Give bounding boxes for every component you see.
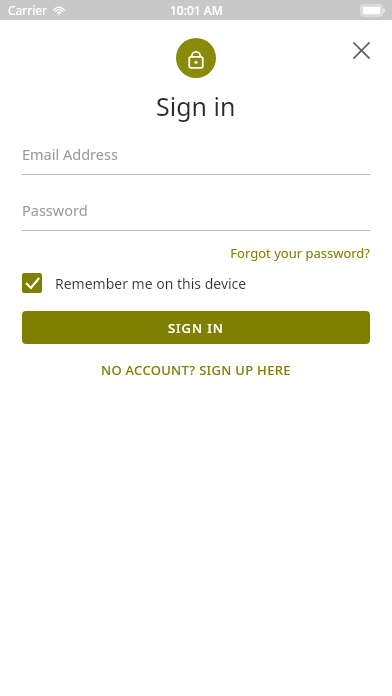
button[interactable]: Close (342, 31, 380, 69)
button[interactable]: Remember me on this device (22, 273, 370, 293)
staticText: Carrier (8, 2, 48, 18)
button[interactable]: NO ACCOUNT? SIGN UP HERE (95, 357, 297, 383)
staticText: Sign in (156, 89, 236, 123)
button[interactable]: SIGN IN (22, 311, 370, 344)
button[interactable]: Password (22, 197, 370, 231)
staticText: SIGN IN (168, 319, 224, 337)
staticText: Forgot your password? (230, 244, 370, 262)
button[interactable]: Email Address (22, 141, 370, 175)
staticText: Email Address (22, 144, 118, 164)
staticText: Remember me on this device (55, 274, 247, 293)
staticText: NO ACCOUNT? SIGN UP HERE (101, 361, 291, 379)
staticText: 10:01 AM (170, 2, 223, 18)
button[interactable]: Forgot your password? (230, 242, 370, 264)
staticText: Password (22, 200, 88, 220)
